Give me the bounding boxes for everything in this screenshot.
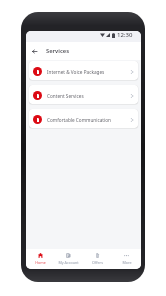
staticText: Content Services [47, 93, 131, 99]
button[interactable]: My Account [54, 253, 83, 265]
staticText: Home [35, 260, 46, 265]
button[interactable]: More [112, 253, 141, 265]
button[interactable]: Internet & Voice Packages [29, 61, 138, 80]
staticText: More [122, 260, 132, 265]
button[interactable]: Back [28, 45, 40, 57]
staticText: Offers [92, 260, 103, 265]
staticText: My Account [58, 260, 79, 265]
staticText: Comfortable Communication [47, 117, 131, 123]
staticText: Internet & Voice Packages [47, 69, 131, 75]
staticText: Services [46, 47, 70, 55]
staticText: 12:30 [117, 31, 133, 39]
button[interactable]: Home [26, 253, 54, 265]
button[interactable]: Content Services [29, 85, 138, 104]
button[interactable]: Offers [83, 253, 112, 265]
button[interactable]: Comfortable Communication [29, 109, 138, 128]
